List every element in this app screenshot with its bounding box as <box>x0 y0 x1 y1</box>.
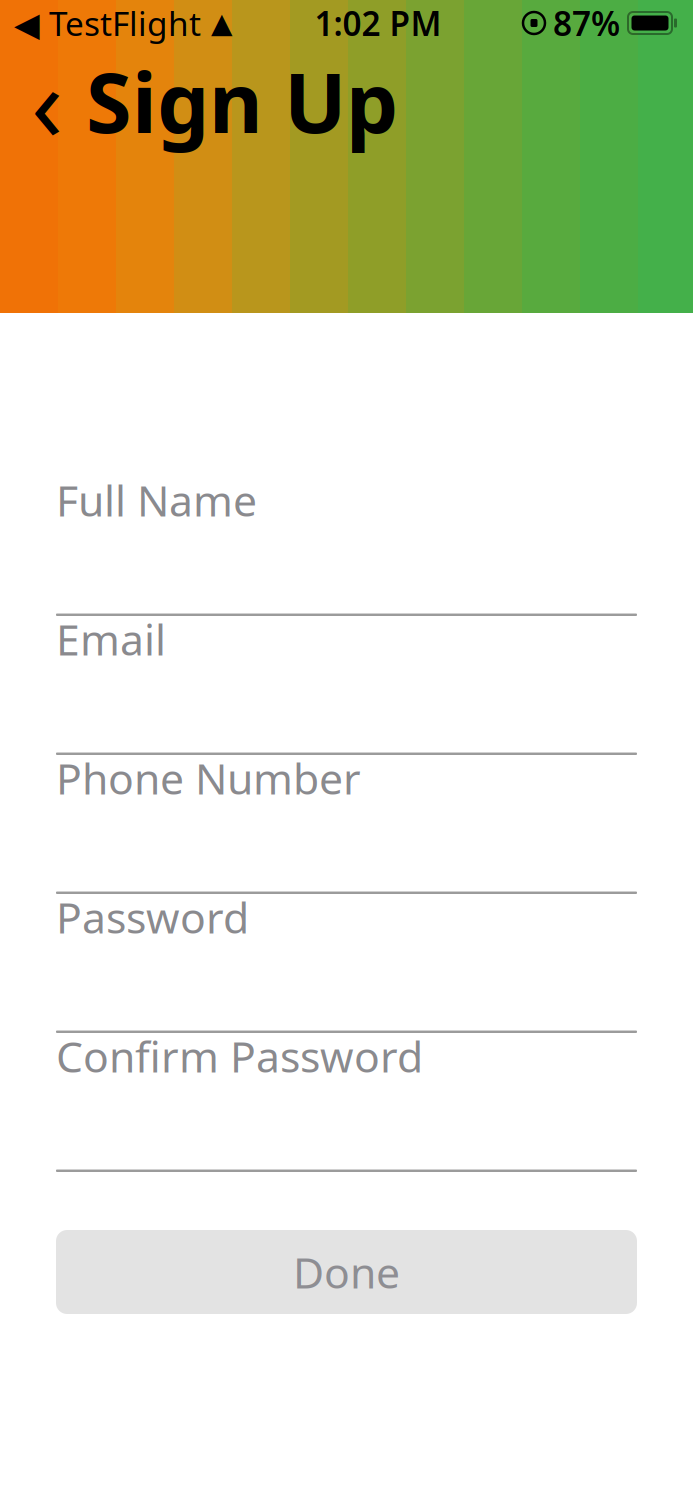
staticText: ▲ <box>201 7 233 39</box>
button[interactable]: Confirm Password <box>56 1033 637 1172</box>
staticText: Phone Number <box>56 750 361 806</box>
staticText: 1:02 PM <box>314 1 441 45</box>
button[interactable]: Done <box>56 1230 637 1314</box>
staticText: Email <box>56 611 166 667</box>
button[interactable]: Phone Number <box>56 755 637 894</box>
staticText: Sign Up <box>86 46 398 156</box>
staticText: 87% <box>553 1 620 45</box>
staticText: ◀ TestFlight <box>14 1 201 45</box>
button[interactable]: Password <box>56 894 637 1033</box>
button[interactable]: Email <box>56 616 637 755</box>
staticText: Confirm Password <box>56 1028 423 1084</box>
staticText: ‹ <box>31 32 63 170</box>
button[interactable]: Back <box>14 53 80 149</box>
staticText: Password <box>56 889 249 945</box>
staticText: Full Name <box>56 472 257 528</box>
button[interactable]: Sign Up <box>80 46 398 156</box>
button[interactable]: Full Name <box>56 477 637 616</box>
staticText: Done <box>293 1244 400 1300</box>
